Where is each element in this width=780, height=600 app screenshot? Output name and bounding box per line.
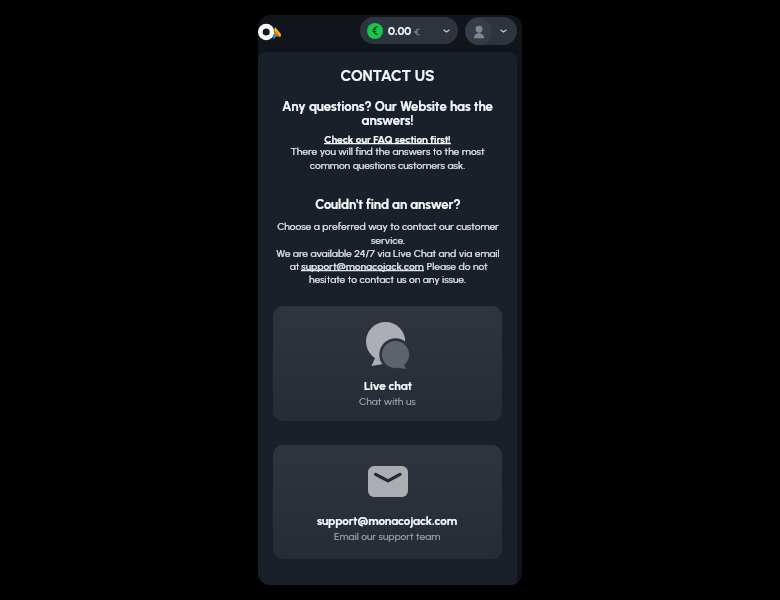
staticText: Email our support team (334, 530, 441, 542)
staticText: Choose a preferred way to contact our cu… (277, 220, 499, 247)
button[interactable]: support@monacojack.com (301, 260, 424, 272)
staticText: Live chat (364, 379, 412, 393)
staticText: Check our FAQ section first! (324, 133, 451, 145)
staticText: Please do not (424, 260, 488, 272)
staticText: 0.00 (388, 24, 412, 38)
button[interactable]: Check our FAQ section first! (324, 133, 451, 145)
staticText: There you will find the answers to the m… (290, 145, 485, 172)
staticText: We are available 24/7 via Live Chat and … (276, 247, 500, 259)
staticText: hesitate to contact us on any issue. (309, 273, 466, 285)
button[interactable]: Account menu (465, 17, 517, 45)
staticText: CONTACT US (340, 67, 435, 85)
staticText: Couldn't find an answer? (315, 197, 461, 213)
staticText: at (288, 260, 301, 272)
staticText: € (372, 25, 379, 38)
staticText: Any questions? Our Website has the answe… (273, 99, 502, 129)
button[interactable]: support@monacojack.com (273, 445, 502, 559)
staticText: Chat with us (359, 395, 416, 407)
button[interactable]: Home (258, 19, 284, 45)
button[interactable]: Live chat (273, 306, 502, 421)
button[interactable]: € (360, 17, 458, 44)
staticText: support@monacojack.com (301, 260, 424, 272)
staticText: € (414, 25, 420, 37)
staticText: support@monacojack.com (317, 514, 458, 528)
